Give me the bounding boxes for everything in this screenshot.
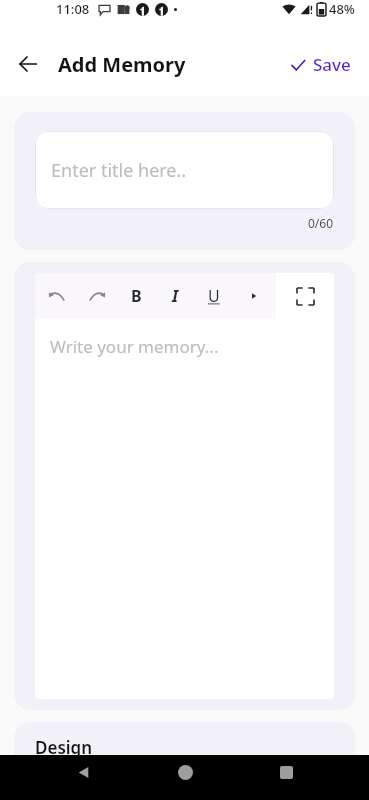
- staticText: 11:08: [56, 0, 90, 18]
- button[interactable]: Italic: [158, 273, 192, 319]
- button[interactable]: Back: [66, 755, 100, 789]
- button[interactable]: More: [237, 273, 271, 319]
- staticText: 0/60: [308, 215, 334, 231]
- button[interactable]: Undo: [40, 273, 74, 319]
- button[interactable]: Design: [14, 722, 355, 800]
- staticText: Add Memory: [58, 51, 186, 78]
- button[interactable]: Bold: [119, 273, 153, 319]
- button[interactable]: Fullscreen: [276, 273, 334, 319]
- staticText: Write your memory...: [50, 335, 219, 358]
- button[interactable]: Enter title here..: [35, 131, 334, 209]
- button[interactable]: Save: [286, 47, 355, 82]
- button[interactable]: Write your memory...: [35, 319, 334, 699]
- button[interactable]: Recents: [269, 755, 303, 789]
- staticText: B: [131, 285, 142, 307]
- staticText: Design: [35, 736, 93, 759]
- button[interactable]: Redo: [80, 273, 114, 319]
- button[interactable]: Underline: [197, 273, 231, 319]
- button[interactable]: Home: [168, 755, 202, 789]
- staticText: Enter title here..: [51, 158, 187, 183]
- staticText: Save: [313, 53, 351, 76]
- button[interactable]: Back: [8, 44, 48, 84]
- staticText: 48%: [329, 0, 355, 18]
- staticText: U: [208, 285, 220, 307]
- staticText: I: [172, 285, 179, 307]
